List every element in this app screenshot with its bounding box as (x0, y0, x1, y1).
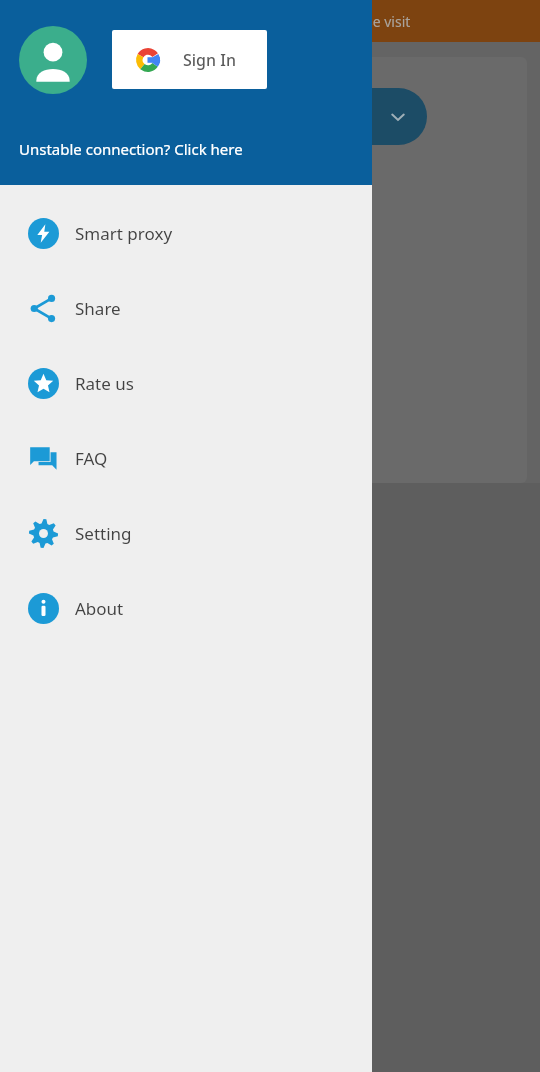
button[interactable]: Smart proxy (0, 196, 372, 271)
button[interactable]: Unstable connection? Click here (0, 130, 372, 168)
staticText: About (75, 597, 124, 620)
staticText: se visit (366, 12, 411, 31)
button[interactable]: Sign In (112, 30, 267, 89)
button[interactable]: Profile (19, 26, 87, 94)
button[interactable]: About (0, 571, 372, 646)
staticText: Share (75, 297, 121, 320)
staticText: Sign In (183, 49, 236, 71)
staticText: Rate us (75, 372, 134, 395)
staticText: FAQ (75, 447, 108, 470)
button[interactable]: Share (0, 271, 372, 346)
staticText: Unstable connection? Click here (19, 139, 243, 159)
staticText: Setting (75, 522, 132, 545)
button[interactable]: Setting (0, 496, 372, 571)
button[interactable]: Rate us (0, 346, 372, 421)
staticText: Smart proxy (75, 222, 173, 245)
button[interactable]: FAQ (0, 421, 372, 496)
